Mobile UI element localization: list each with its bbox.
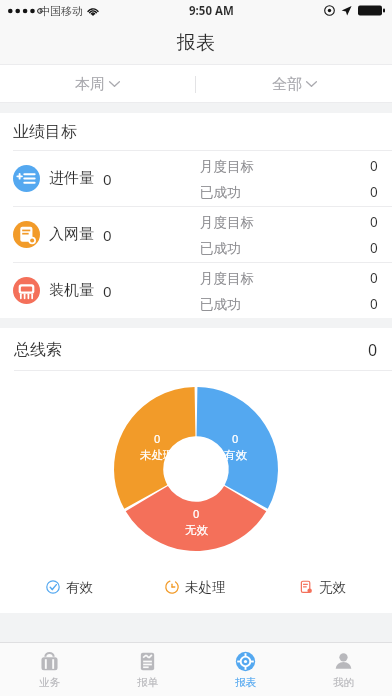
staticText: 0 xyxy=(103,169,112,189)
button[interactable]: 未处理 xyxy=(132,567,259,607)
staticText: 已成功 xyxy=(200,296,241,313)
staticText: 无效 xyxy=(319,579,346,596)
button[interactable]: 我的 xyxy=(294,643,392,696)
staticText: 无效 xyxy=(185,523,208,537)
staticText: 全部 xyxy=(272,75,302,94)
staticText: 未处理 xyxy=(185,579,226,596)
button[interactable]: 报表 xyxy=(196,643,294,696)
staticText: 有效 xyxy=(224,448,247,462)
staticText: 月度目标 xyxy=(200,214,254,231)
staticText: 进件量 xyxy=(49,169,94,188)
staticText: 0 xyxy=(370,213,378,231)
button[interactable]: 有效 xyxy=(6,567,132,607)
staticText: 0 xyxy=(370,183,378,201)
button[interactable]: 总线索 xyxy=(0,328,392,371)
staticText: 月度目标 xyxy=(200,158,254,175)
button[interactable]: 业务 xyxy=(0,643,98,696)
staticText: 月度目标 xyxy=(200,270,254,287)
staticText: 报表 xyxy=(177,31,215,55)
button[interactable]: 无效 xyxy=(259,567,386,607)
staticText: 9:50 AM xyxy=(189,3,234,19)
button[interactable]: 本周 xyxy=(0,65,195,103)
staticText: 业务 xyxy=(39,676,60,689)
staticText: 本周 xyxy=(75,75,105,94)
button[interactable]: 全部 xyxy=(196,65,392,103)
button[interactable]: 进件量 xyxy=(0,150,392,206)
staticText: 报单 xyxy=(137,676,158,689)
button[interactable]: 入网量 xyxy=(0,206,392,262)
staticText: 0 xyxy=(193,506,200,521)
staticText: 0 xyxy=(103,281,112,301)
staticText: 已成功 xyxy=(200,184,241,201)
staticText: 0 xyxy=(368,339,378,361)
staticText: 报表 xyxy=(235,676,256,689)
staticText: 0 xyxy=(154,431,161,446)
staticText: 我的 xyxy=(333,676,354,689)
button[interactable]: 报单 xyxy=(98,643,196,696)
staticText: 0 xyxy=(232,431,239,446)
staticText: 有效 xyxy=(66,579,93,596)
staticText: 0 xyxy=(370,269,378,287)
staticText: 中国移动 xyxy=(39,4,83,18)
staticText: 0 xyxy=(370,157,378,175)
staticText: 装机量 xyxy=(49,281,94,300)
staticText: 入网量 xyxy=(49,225,94,244)
staticText: 未处理 xyxy=(140,448,175,462)
staticText: 总线索 xyxy=(14,340,62,360)
staticText: 0 xyxy=(370,239,378,257)
staticText: 0 xyxy=(103,225,112,245)
staticText: 0 xyxy=(370,295,378,313)
staticText: 已成功 xyxy=(200,240,241,257)
staticText: 业绩目标 xyxy=(13,122,77,142)
button[interactable]: 装机量 xyxy=(0,262,392,318)
